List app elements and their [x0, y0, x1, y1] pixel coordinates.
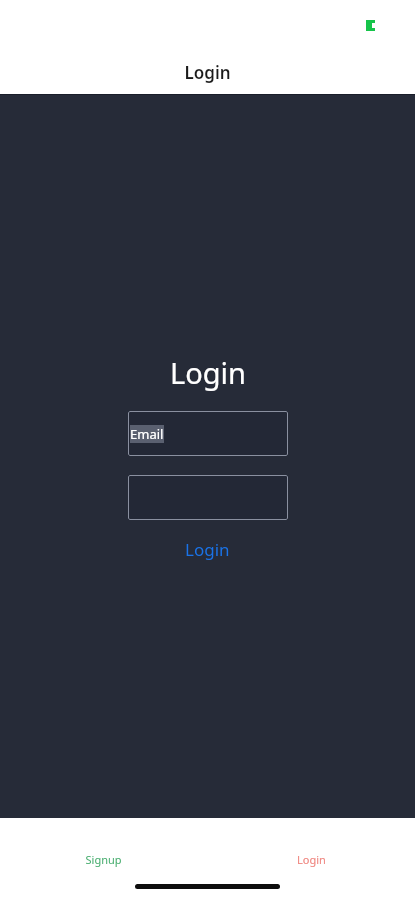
- staticText: Login: [184, 61, 231, 84]
- staticText: Login: [170, 353, 246, 392]
- staticText: Login: [297, 852, 326, 867]
- button[interactable]: Signup: [0, 846, 207, 873]
- other: Status indicator: [366, 20, 375, 31]
- button[interactable]: [128, 475, 288, 520]
- staticText: Login: [185, 538, 230, 561]
- staticText: Signup: [85, 852, 122, 867]
- button[interactable]: Email: [128, 411, 288, 456]
- staticText: Email: [130, 425, 164, 443]
- button[interactable]: Login: [175, 534, 240, 565]
- button[interactable]: Login: [207, 846, 415, 873]
